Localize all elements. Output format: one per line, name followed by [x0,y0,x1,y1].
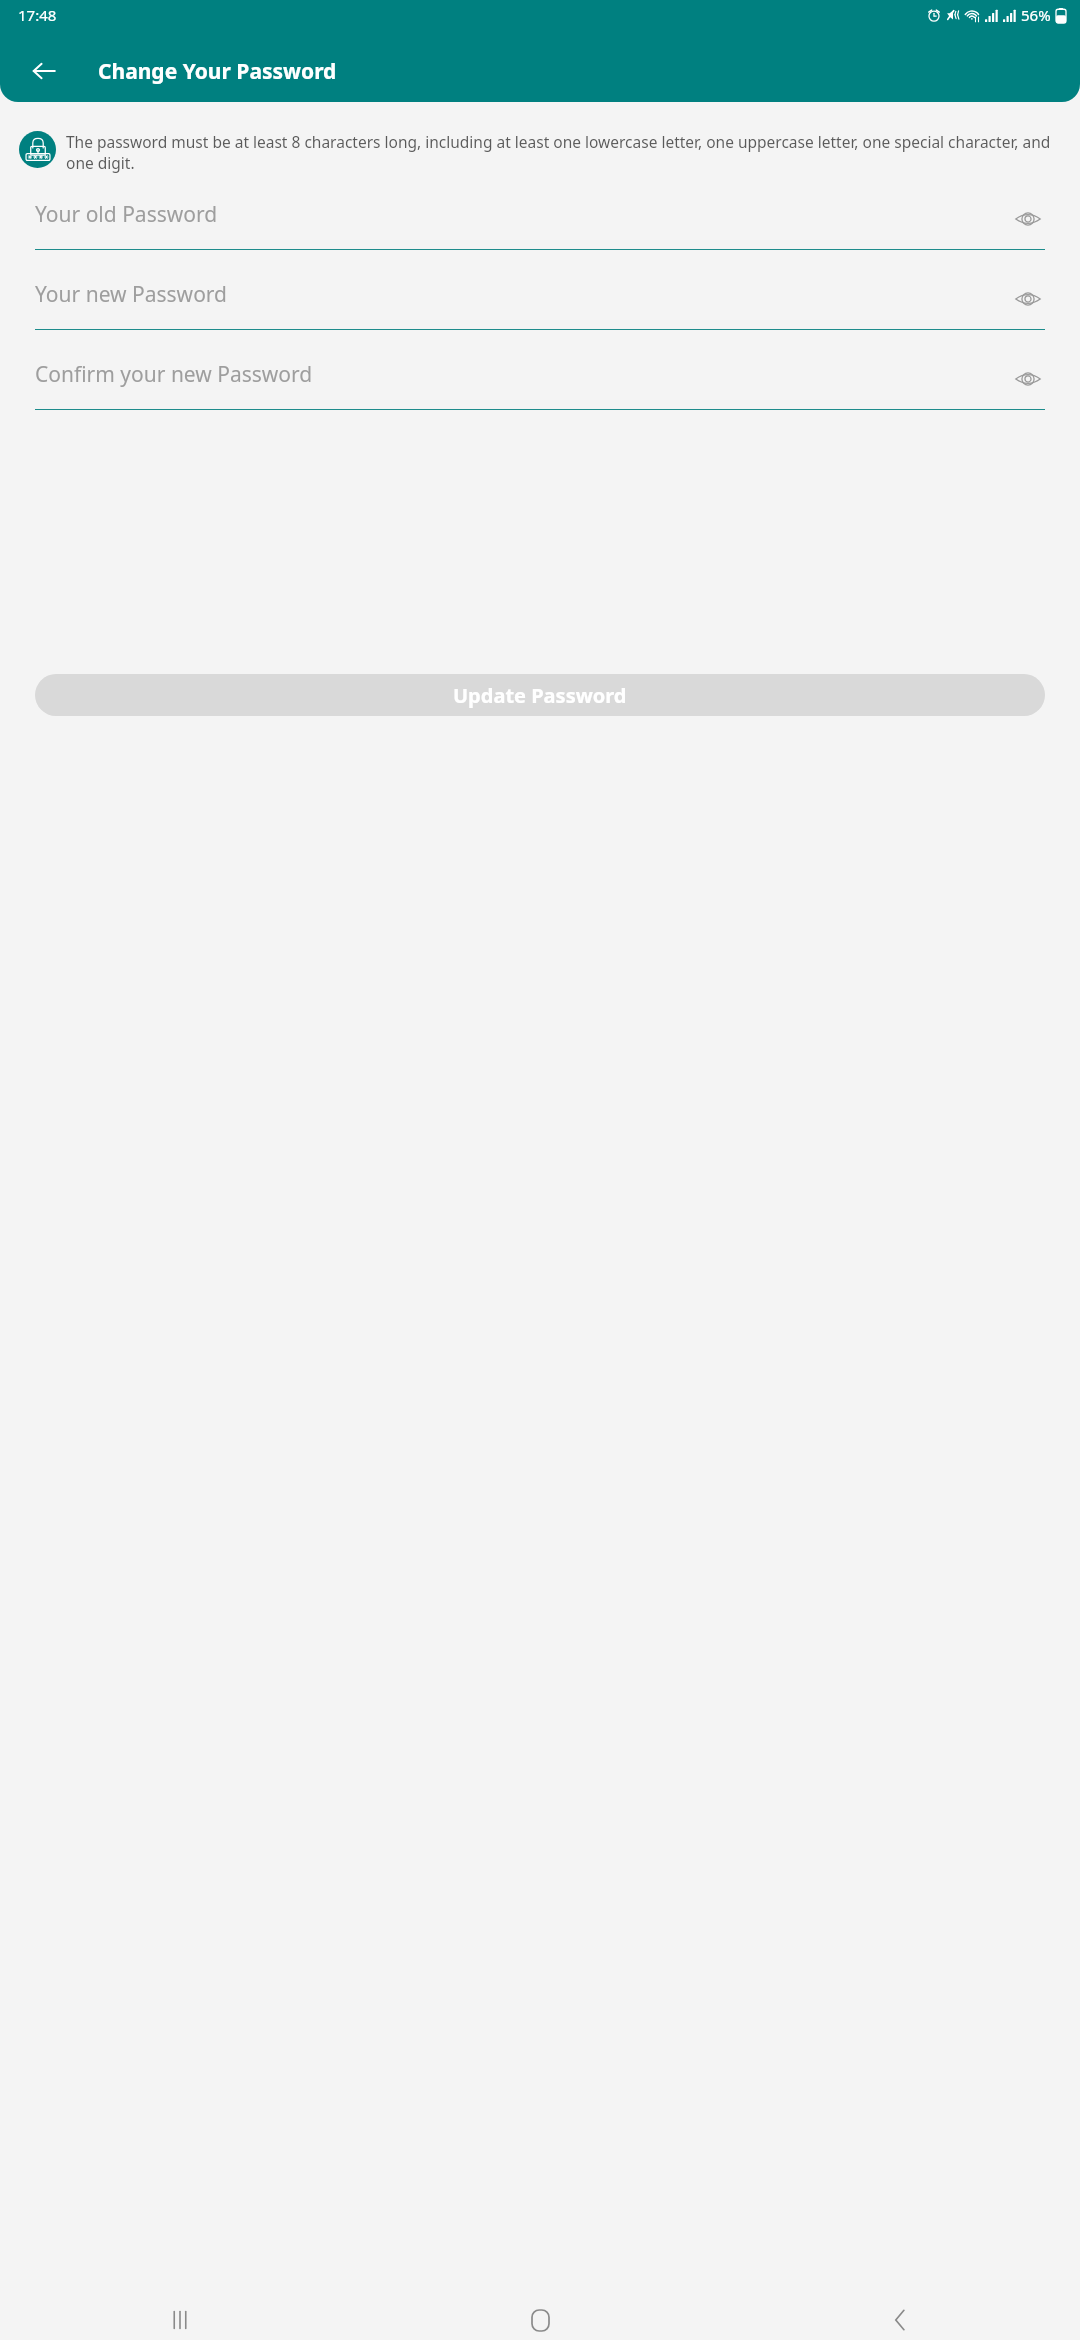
button[interactable]: Show password [1011,282,1045,316]
button[interactable]: Update Password [35,674,1045,716]
button[interactable]: Confirm your new Password [35,360,1045,410]
staticText: Your old Password [35,200,218,229]
staticText: The password must be at least 8 characte… [66,131,1061,174]
button[interactable]: Your old Password [35,200,1045,250]
staticText: 56% [1021,5,1051,25]
button[interactable]: Home [360,2300,720,2340]
button[interactable]: Show password [1011,362,1045,396]
staticText: 17:48 [18,5,57,25]
button[interactable]: Back [24,51,64,91]
staticText: Your new Password [35,280,228,309]
button[interactable]: Back [720,2300,1080,2340]
button[interactable]: Your new Password [35,280,1045,330]
button[interactable]: Recents [0,2300,360,2340]
staticText: Change Your Password [98,57,337,86]
staticText: Confirm your new Password [35,360,313,389]
staticText: Update Password [453,682,627,709]
button[interactable]: Show password [1011,202,1045,236]
